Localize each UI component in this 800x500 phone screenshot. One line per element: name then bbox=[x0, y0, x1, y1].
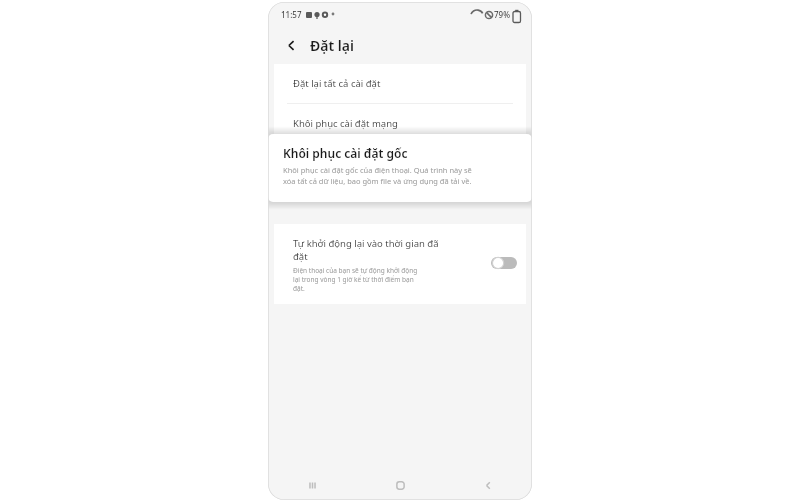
staticText: Khôi phục cài đặt gốc của điện thoại. Qu… bbox=[283, 165, 472, 186]
button[interactable]: Tự khởi động lại vào thời gian đã đặt bbox=[274, 224, 526, 304]
staticText: Điện thoại của bạn sẽ tự động khởi động … bbox=[293, 266, 418, 293]
staticText: Khôi phục cài đặt gốc bbox=[283, 145, 408, 161]
staticText: Đặt lại tất cả cài đặt bbox=[293, 77, 381, 90]
button[interactable]: Back bbox=[444, 470, 532, 500]
button[interactable]: Back bbox=[279, 33, 303, 57]
button[interactable]: Recents bbox=[268, 470, 356, 500]
button[interactable]: Auto restart toggle bbox=[491, 256, 517, 270]
staticText: Đặt lại cài đặt hỗ trợ bbox=[293, 157, 383, 170]
staticText: 11:57 bbox=[281, 9, 302, 20]
button[interactable]: Khôi phục cài đặt mạng bbox=[274, 104, 526, 143]
button[interactable]: Đặt lại cài đặt hỗ trợ bbox=[274, 144, 526, 183]
staticText: Tự khởi động lại vào thời gian đã đặt bbox=[293, 237, 439, 263]
staticText: Đặt lại bbox=[310, 36, 354, 55]
button[interactable]: Khôi phục cài đặt gốc bbox=[268, 134, 532, 202]
staticText: Khôi phục cài đặt mạng bbox=[293, 117, 398, 130]
button[interactable]: Home bbox=[356, 470, 444, 500]
button[interactable]: Đặt lại tất cả cài đặt bbox=[274, 64, 526, 103]
staticText: 79% bbox=[494, 9, 510, 20]
